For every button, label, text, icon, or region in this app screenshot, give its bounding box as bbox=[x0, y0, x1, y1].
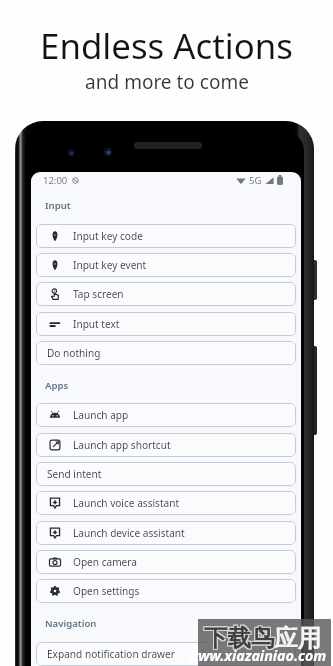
staticText: www.xiazainiao.com bbox=[187, 646, 327, 665]
staticText: Expand notification drawer bbox=[47, 647, 175, 661]
button[interactable]: Open settings bbox=[36, 579, 296, 603]
staticText: Do nothing bbox=[47, 346, 101, 360]
button[interactable]: Expand notification drawer bbox=[36, 642, 296, 666]
staticText: Input text bbox=[73, 317, 120, 331]
button[interactable]: Send intent bbox=[36, 462, 296, 486]
staticText: 应用 bbox=[274, 623, 321, 653]
other: Signal bbox=[265, 176, 274, 185]
staticText: and more to come bbox=[85, 69, 249, 95]
button[interactable]: Launch app shortcut bbox=[36, 433, 296, 457]
staticText: Open settings bbox=[73, 584, 140, 598]
button[interactable]: Input key code bbox=[36, 224, 296, 248]
staticText: Launch app bbox=[73, 408, 129, 422]
button[interactable]: Launch voice assistant bbox=[36, 491, 296, 515]
staticText: Input key code bbox=[73, 229, 143, 243]
staticText: 下载鸟 bbox=[204, 623, 275, 653]
staticText: Input bbox=[45, 199, 71, 212]
staticText: Apps bbox=[45, 379, 69, 392]
staticText: Input key event bbox=[73, 258, 147, 272]
staticText: Open camera bbox=[73, 555, 137, 569]
staticText: Launch app shortcut bbox=[73, 438, 171, 452]
staticText: Launch voice assistant bbox=[73, 496, 180, 510]
button[interactable]: Open camera bbox=[36, 550, 296, 574]
button[interactable]: Launch device assistant bbox=[36, 521, 296, 545]
staticText: 5G bbox=[249, 174, 262, 187]
staticText: Tap screen bbox=[73, 287, 124, 301]
button[interactable]: Input key event bbox=[36, 253, 296, 277]
staticText: 下载鸟 bbox=[205, 624, 276, 654]
button[interactable]: Do nothing bbox=[36, 341, 296, 365]
staticText: Endless Actions bbox=[40, 22, 293, 69]
staticText: Navigation bbox=[45, 617, 97, 630]
button[interactable]: Launch app bbox=[36, 403, 296, 427]
staticText: 12:00 bbox=[43, 174, 68, 187]
staticText: 下载鸟 bbox=[203, 624, 274, 654]
staticText: 下载鸟 bbox=[205, 622, 276, 652]
staticText: Launch device assistant bbox=[73, 526, 185, 540]
staticText: 下载鸟 bbox=[203, 622, 274, 652]
button[interactable]: Input text bbox=[36, 312, 296, 336]
staticText: Send intent bbox=[47, 467, 102, 481]
other: Battery bbox=[277, 175, 283, 185]
other: Wi-Fi bbox=[236, 175, 246, 185]
button[interactable]: Tap screen bbox=[36, 282, 296, 306]
other: Alarm bbox=[72, 177, 79, 184]
